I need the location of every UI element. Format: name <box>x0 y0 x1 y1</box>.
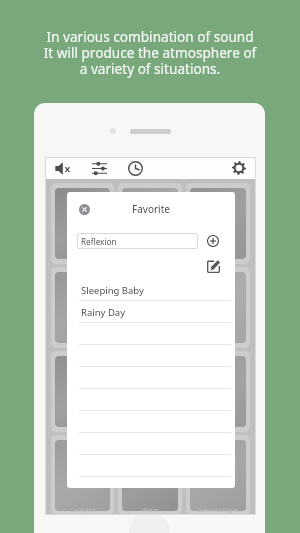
button[interactable]: Water <box>118 435 182 515</box>
button[interactable]: Rainy Day <box>79 301 231 323</box>
staticText: Summer Night <box>197 506 239 514</box>
staticText: Ocean <box>73 339 92 347</box>
button[interactable] <box>79 411 231 433</box>
button[interactable]: Campfire <box>51 435 114 515</box>
button[interactable]: Edit list <box>205 258 221 274</box>
button[interactable]: Sound mixer <box>90 160 109 176</box>
button[interactable]: Night <box>118 351 182 432</box>
button[interactable] <box>79 433 231 455</box>
other: Home <box>129 512 170 533</box>
staticText: In various combination of sound It will … <box>0 27 300 78</box>
staticText: River <box>143 339 158 347</box>
staticText: Wind <box>211 255 226 263</box>
button[interactable]: Forest <box>186 267 250 348</box>
button[interactable] <box>79 345 231 367</box>
button[interactable]: Wind <box>186 183 250 264</box>
button[interactable]: Fire <box>186 351 250 432</box>
button[interactable]: Rain <box>51 183 114 264</box>
button[interactable]: Ocean <box>51 267 114 348</box>
staticText: Forest <box>209 339 227 347</box>
button[interactable] <box>79 389 231 411</box>
button[interactable]: Add favorite <box>205 233 221 249</box>
button[interactable]: Settings <box>229 160 248 176</box>
staticText: Favorite <box>132 202 170 216</box>
button[interactable] <box>79 455 231 477</box>
staticText: Reflexion <box>81 236 117 247</box>
staticText: Water <box>142 506 159 514</box>
button[interactable]: Sleeping Baby <box>79 279 231 301</box>
button[interactable]: Birds <box>51 351 114 432</box>
staticText: Campfire <box>70 506 96 514</box>
button[interactable]: Thunder <box>118 183 182 264</box>
button[interactable]: Close <box>76 201 92 217</box>
button[interactable]: Timer <box>126 160 145 176</box>
button[interactable]: Mute <box>53 160 73 176</box>
button[interactable]: River <box>118 267 182 348</box>
staticText: Sleeping Baby <box>81 284 144 297</box>
button[interactable] <box>79 323 231 345</box>
button[interactable]: Reflexion <box>77 233 198 249</box>
button[interactable] <box>79 367 231 389</box>
staticText: Rainy Day <box>81 306 125 319</box>
button[interactable]: Summer Night <box>186 435 250 515</box>
